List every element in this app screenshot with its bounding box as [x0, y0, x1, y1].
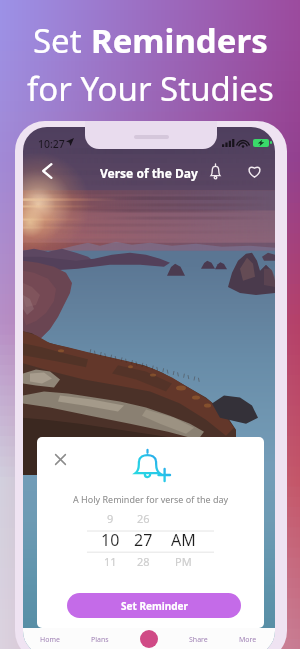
staticText: Reminders [91, 18, 268, 63]
staticText: 11 [104, 554, 117, 569]
staticText: 27 [134, 529, 153, 551]
staticText: Home [40, 635, 60, 645]
staticText: PM [175, 554, 192, 569]
staticText: 26 [137, 511, 150, 526]
button[interactable]: Set Reminder [67, 593, 241, 618]
staticText: for Your Studies [27, 66, 274, 111]
button[interactable]: Notifications [203, 159, 227, 183]
button[interactable]: Share [176, 635, 220, 645]
staticText: 9 [107, 511, 114, 526]
button[interactable]: Plans [78, 635, 122, 645]
staticText: More [239, 635, 257, 645]
staticText: Verse of the Day [100, 165, 198, 181]
button[interactable]: Back [34, 158, 59, 183]
button[interactable]: More [226, 635, 270, 645]
button[interactable]: Close [51, 450, 70, 469]
staticText: AM [171, 529, 196, 551]
staticText: 10:27 [38, 137, 65, 151]
staticText: Set [33, 18, 91, 63]
staticText: 10 [101, 529, 120, 551]
staticText: 28 [137, 554, 150, 569]
button[interactable]: Home [28, 635, 72, 645]
staticText: Plans [91, 635, 109, 645]
staticText: Set Reminder [121, 599, 188, 613]
button[interactable]: Favorite [242, 159, 266, 183]
staticText: Share [189, 635, 208, 645]
staticText: A Holy Reminder for verse of the day [73, 493, 229, 505]
